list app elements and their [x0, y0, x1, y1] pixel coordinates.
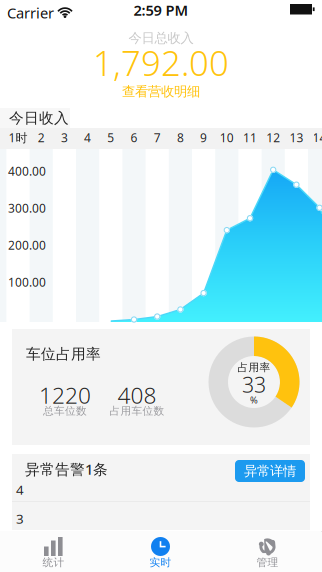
- staticText: 异常告警1条: [25, 459, 108, 479]
- staticText: 查看营收明细: [122, 83, 200, 100]
- staticText: 3: [61, 129, 68, 145]
- staticText: 异常详情: [244, 463, 296, 479]
- staticText: 300.00: [8, 200, 46, 216]
- staticText: 2:59 PM: [133, 0, 188, 20]
- staticText: 8: [177, 129, 184, 145]
- staticText: 1220: [39, 380, 91, 410]
- staticText: 1,792.00: [93, 39, 229, 85]
- staticText: 100.00: [8, 274, 46, 290]
- staticText: 10: [220, 129, 234, 145]
- button[interactable]: 实时: [107, 531, 214, 572]
- staticText: 9: [200, 129, 207, 145]
- button[interactable]: 管理: [214, 531, 321, 572]
- staticText: %: [250, 394, 258, 406]
- staticText: 占用率: [237, 361, 270, 374]
- staticText: 实时: [149, 556, 171, 569]
- staticText: 200.00: [8, 237, 46, 253]
- staticText: 14: [313, 129, 322, 145]
- staticText: 11: [243, 129, 257, 145]
- staticText: 今日总收入: [128, 30, 193, 46]
- button[interactable]: 1,792.00: [0, 33, 322, 92]
- staticText: 总车位数: [43, 404, 87, 417]
- staticText: 2: [38, 129, 45, 145]
- staticText: Carrier: [7, 3, 54, 22]
- button[interactable]: 统计: [0, 531, 107, 572]
- staticText: 4: [84, 129, 91, 145]
- staticText: 12: [266, 129, 280, 145]
- staticText: 管理: [256, 556, 278, 569]
- staticText: 400.00: [8, 163, 46, 179]
- button[interactable]: 异常详情: [235, 460, 305, 482]
- staticText: 33: [242, 370, 266, 399]
- staticText: 5: [107, 129, 114, 145]
- staticText: 13: [289, 129, 303, 145]
- staticText: 占用车位数: [109, 404, 164, 417]
- staticText: 今日收入: [9, 109, 69, 127]
- staticText: 7: [154, 129, 161, 145]
- staticText: 3: [16, 510, 24, 527]
- staticText: 统计: [42, 556, 64, 569]
- staticText: 4: [16, 481, 24, 498]
- staticText: 车位占用率: [26, 345, 101, 363]
- staticText: 1时: [8, 129, 27, 145]
- staticText: 6: [130, 129, 137, 145]
- staticText: 408: [117, 380, 156, 410]
